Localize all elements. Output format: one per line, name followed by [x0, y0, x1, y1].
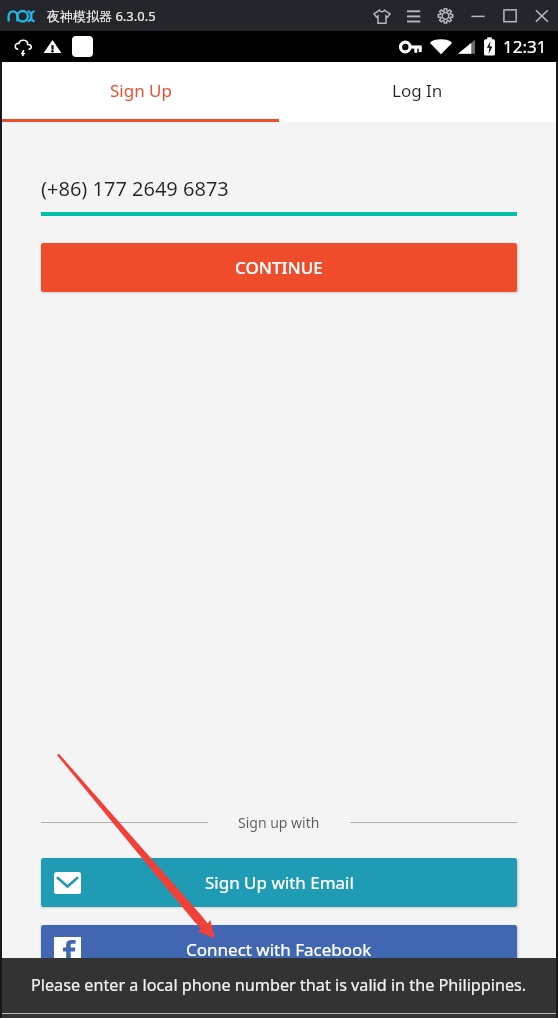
button[interactable]: Settings — [430, 0, 460, 31]
button[interactable]: Log In — [279, 62, 556, 119]
staticText: Connect with Facebook — [186, 938, 372, 961]
staticText: (+86) 177 2649 6873 — [41, 175, 229, 202]
staticText: 12:31 — [503, 35, 547, 58]
button[interactable]: Sign Up with Email — [41, 858, 517, 907]
button[interactable]: Theme — [360, 0, 390, 31]
button[interactable]: Menu — [392, 0, 422, 31]
button[interactable]: Connect with Facebook — [41, 925, 517, 974]
staticText: 夜神模拟器 6.3.0.5 — [47, 7, 156, 25]
staticText: Sign up with — [238, 813, 320, 832]
staticText: Log In — [392, 79, 443, 102]
staticText: Sign Up — [110, 79, 172, 102]
button[interactable]: Close — [528, 0, 557, 31]
staticText: Please enter a local phone number that i… — [31, 974, 527, 996]
button[interactable]: Maximise — [497, 0, 526, 31]
button[interactable]: Minimise — [465, 0, 494, 31]
staticText: Sign Up with Email — [205, 871, 354, 894]
button[interactable]: Sign Up — [2, 62, 279, 119]
button[interactable]: CONTINUE — [41, 243, 517, 292]
staticText: CONTINUE — [235, 256, 323, 279]
